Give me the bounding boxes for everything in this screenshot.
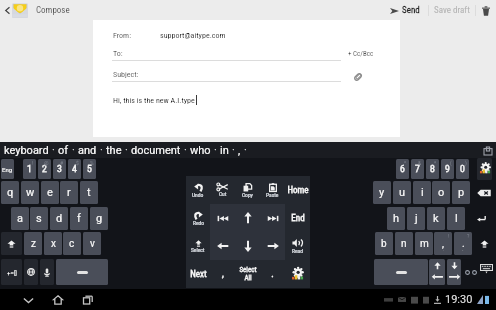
button[interactable]: 2: [38, 159, 51, 179]
button[interactable]: ,: [434, 232, 452, 255]
button[interactable]: Next: [186, 260, 210, 288]
button[interactable]: [285, 260, 310, 288]
button[interactable]: [1, 232, 22, 255]
button[interactable]: b: [375, 232, 393, 255]
button[interactable]: Copy: [235, 176, 260, 204]
button[interactable]: a: [11, 207, 29, 230]
staticText: Save draft: [434, 5, 470, 16]
button[interactable]: m: [415, 232, 433, 255]
button[interactable]: End: [285, 204, 310, 232]
button[interactable]: [260, 204, 285, 232]
button[interactable]: +=[]: [1, 259, 22, 285]
button[interactable]: t: [80, 181, 98, 204]
button[interactable]: .: [260, 260, 285, 288]
button[interactable]: Delete: [479, 4, 492, 17]
button[interactable]: 7: [411, 159, 424, 179]
button[interactable]: 3: [53, 159, 66, 179]
button[interactable]: in: [219, 144, 230, 157]
button[interactable]: 0: [456, 159, 469, 179]
button[interactable]: [374, 259, 428, 285]
button[interactable]: keyboard: [3, 144, 50, 157]
button[interactable]: [235, 232, 260, 260]
button[interactable]: Hide keyboard: [479, 262, 493, 276]
staticText: (: [450, 160, 452, 166]
button[interactable]: x: [44, 232, 62, 255]
staticText: Select All: [239, 266, 257, 282]
button[interactable]: z: [24, 232, 42, 255]
button[interactable]: y: [373, 181, 391, 204]
button[interactable]: [24, 259, 38, 285]
button[interactable]: [477, 158, 492, 180]
button[interactable]: n: [395, 232, 413, 255]
button[interactable]: Redo: [186, 204, 210, 232]
button[interactable]: e: [41, 181, 59, 204]
button[interactable]: g: [90, 207, 108, 230]
button[interactable]: Paste: [260, 176, 285, 204]
button[interactable]: Cut: [210, 176, 235, 204]
button[interactable]: Eng: [1, 159, 14, 179]
button[interactable]: 8: [426, 159, 439, 179]
staticText: m: [420, 238, 429, 250]
button[interactable]: j: [407, 207, 425, 230]
button[interactable]: Recent apps: [78, 290, 98, 310]
button[interactable]: who: [189, 144, 212, 157]
button[interactable]: 6: [396, 159, 409, 179]
button[interactable]: [235, 204, 260, 232]
button[interactable]: i: [413, 181, 431, 204]
button[interactable]: q: [1, 181, 19, 204]
button[interactable]: w: [21, 181, 39, 204]
button[interactable]: u: [393, 181, 411, 204]
button[interactable]: f: [70, 207, 88, 230]
button[interactable]: [210, 204, 235, 232]
button[interactable]: of: [57, 144, 70, 157]
button[interactable]: [429, 259, 445, 285]
button[interactable]: Backspace: [471, 180, 496, 205]
button[interactable]: the: [105, 144, 123, 157]
button[interactable]: Shift: [473, 231, 496, 256]
staticText: e: [47, 186, 53, 199]
button[interactable]: Undo: [186, 176, 210, 204]
button[interactable]: Select All: [235, 260, 260, 288]
button[interactable]: r: [60, 181, 78, 204]
button[interactable]: Keyboard options: [483, 146, 492, 155]
button[interactable]: 5: [83, 159, 96, 179]
button[interactable]: c: [63, 232, 81, 255]
button[interactable]: More: [463, 258, 478, 286]
button[interactable]: 9: [441, 159, 454, 179]
button[interactable]: ,: [210, 260, 235, 288]
button[interactable]: [56, 259, 108, 285]
button[interactable]: h: [387, 207, 405, 230]
button[interactable]: and: [77, 144, 98, 157]
button[interactable]: Home: [285, 176, 310, 204]
button[interactable]: Back: [18, 290, 38, 310]
button[interactable]: 4: [68, 159, 81, 179]
button[interactable]: Attach file: [351, 70, 365, 84]
button[interactable]: + Cc/Bcc: [346, 48, 376, 60]
button[interactable]: Home: [48, 290, 68, 310]
staticText: ·: [125, 144, 128, 157]
button[interactable]: [40, 259, 54, 285]
button[interactable]: document: [130, 144, 182, 157]
button[interactable]: l: [447, 207, 465, 230]
button[interactable]: .: [454, 232, 472, 255]
button[interactable]: Back: [1, 4, 14, 17]
button[interactable]: Enter: [466, 206, 496, 231]
button[interactable]: o: [432, 181, 450, 204]
button[interactable]: 1: [23, 159, 36, 179]
button[interactable]: [260, 232, 285, 260]
staticText: u: [399, 186, 406, 199]
button[interactable]: Select: [186, 232, 210, 260]
button[interactable]: Save draft: [434, 5, 470, 16]
button[interactable]: d: [50, 207, 68, 230]
button[interactable]: ,: [237, 144, 242, 157]
button[interactable]: k: [427, 207, 445, 230]
button[interactable]: [447, 259, 461, 285]
button[interactable]: [210, 232, 235, 260]
button[interactable]: Read: [285, 232, 310, 260]
button[interactable]: s: [30, 207, 48, 230]
button[interactable]: Send: [388, 5, 422, 16]
button[interactable]: p: [452, 181, 470, 204]
button[interactable]: v: [83, 232, 101, 255]
staticText: c: [69, 238, 75, 250]
